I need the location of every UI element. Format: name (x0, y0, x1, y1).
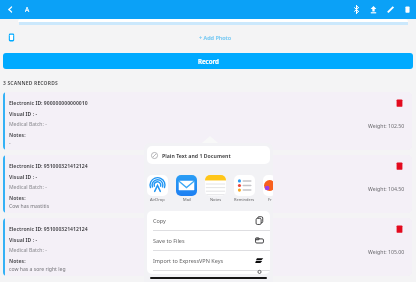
staticText: Save to Files (153, 237, 185, 244)
button[interactable]: Delete record (395, 161, 405, 171)
staticText: Electronic ID: 951000321412124 (9, 226, 88, 233)
staticText: Medical Batch: - (9, 184, 47, 191)
button[interactable]: Share (365, 0, 382, 19)
staticText: Visual ID : - (9, 111, 38, 118)
staticText: Cow has mastitis (9, 203, 50, 210)
staticText: + Add Photo (199, 34, 232, 41)
staticText: AirDrop (150, 197, 165, 202)
staticText: cow has a sore right leg (9, 266, 66, 273)
staticText: Plain Text and 1 Document (162, 152, 231, 159)
staticText: Electronic ID: 900000000000010 (9, 100, 88, 107)
button[interactable]: Plain Text and 1 Document (147, 146, 270, 164)
staticText: Copy (153, 217, 166, 224)
staticText: Notes: (9, 195, 26, 202)
staticText: Import to ExpressVPN Keys (153, 257, 224, 264)
button[interactable]: Back (1, 0, 20, 19)
button[interactable]: Import to ExpressVPN Keys (147, 251, 270, 270)
staticText: Notes: (9, 132, 26, 139)
button[interactable]: Bluetooth (348, 0, 365, 19)
button[interactable]: Delete (399, 0, 416, 19)
staticText: Weight: 102.50 (368, 122, 405, 129)
staticText: Record (198, 57, 219, 65)
button[interactable]: Copy (147, 211, 270, 230)
button[interactable] (147, 175, 168, 196)
button[interactable]: Save to Files (147, 231, 270, 250)
button[interactable]: Record (3, 53, 413, 69)
staticText: - (9, 140, 11, 147)
button[interactable]: Electronic ID: 900000000000010 (3, 92, 412, 150)
staticText: Reminders (234, 197, 255, 202)
staticText: Notes: (9, 258, 26, 265)
staticText: Notes (210, 197, 222, 202)
button[interactable] (263, 175, 273, 196)
staticText: Medical Batch: - (9, 247, 47, 254)
staticText: Fr (268, 197, 272, 202)
staticText: A (25, 5, 30, 14)
button[interactable] (205, 175, 226, 196)
staticText: Weight: 104.50 (368, 185, 405, 192)
button[interactable]: Delete record (395, 98, 405, 108)
button[interactable] (234, 175, 255, 196)
button[interactable] (176, 175, 197, 196)
staticText: Weight: 105.00 (368, 248, 405, 255)
staticText: Visual ID : - (9, 174, 38, 181)
staticText: Visual ID : - (9, 237, 38, 244)
staticText: 3 SCANNED RECORDS (3, 80, 58, 87)
button[interactable]: Edit (382, 0, 399, 19)
staticText: Medical Batch: - (9, 121, 47, 128)
button[interactable]: Electronic ID: 951000321412124 (3, 218, 412, 276)
staticText: Electronic ID: 951000321412124 (9, 163, 88, 170)
button[interactable]: + Add Photo (199, 34, 232, 41)
button[interactable]: Electronic ID: 951000321412124 (3, 155, 412, 213)
staticText: Mail (183, 197, 191, 202)
button[interactable] (147, 271, 270, 274)
button[interactable]: Delete record (395, 224, 405, 234)
